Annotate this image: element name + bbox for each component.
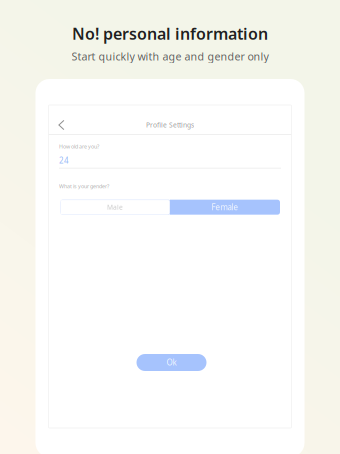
staticText: Male xyxy=(107,203,123,212)
staticText: Ok xyxy=(166,357,176,368)
button[interactable]: Back xyxy=(51,115,71,135)
button[interactable]: Male xyxy=(60,200,170,215)
button[interactable]: Female xyxy=(170,200,280,215)
button[interactable]: Ok xyxy=(136,354,206,371)
staticText: No! personal information xyxy=(72,23,268,44)
staticText: Female xyxy=(211,202,238,212)
staticText: Profile Settings xyxy=(146,121,194,129)
staticText: 24 xyxy=(59,155,69,166)
staticText: Start quickly with age and gender only xyxy=(71,49,268,63)
staticText: How old are you? xyxy=(59,143,99,150)
staticText: What is your gender? xyxy=(59,183,109,190)
